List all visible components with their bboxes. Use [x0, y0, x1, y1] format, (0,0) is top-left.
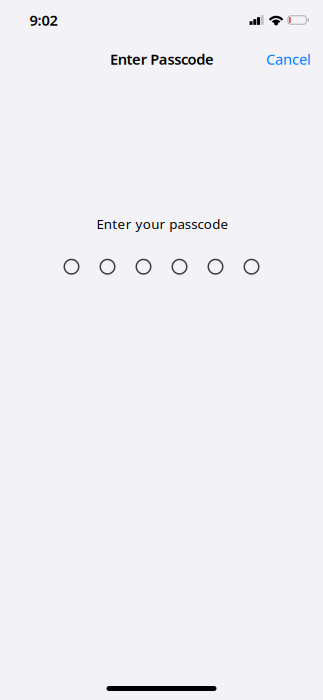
staticText: 9:02	[30, 10, 58, 30]
staticText: Enter your passcode	[96, 215, 228, 233]
staticText: Enter Passcode	[110, 49, 214, 69]
staticText: Cancel	[266, 49, 311, 69]
button[interactable]: Cancel	[260, 42, 317, 76]
button[interactable]: Passcode	[53, 251, 269, 283]
